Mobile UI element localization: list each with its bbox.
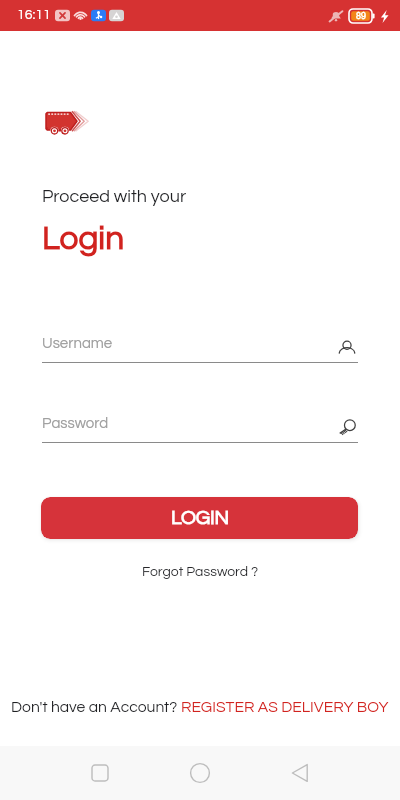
button[interactable]: Password bbox=[42, 415, 358, 443]
staticText: Login bbox=[42, 222, 125, 257]
other: Username bbox=[336, 336, 358, 358]
button[interactable]: Username bbox=[42, 335, 358, 363]
button[interactable]: Home bbox=[190, 763, 210, 783]
button[interactable]: Forgot Password ? bbox=[136, 563, 265, 581]
staticText: Forgot Password ? bbox=[142, 565, 259, 579]
staticText: Password bbox=[42, 416, 109, 431]
button[interactable]: LOGIN bbox=[41, 497, 358, 539]
other: Password bbox=[336, 416, 358, 438]
staticText: Username bbox=[42, 336, 113, 351]
staticText: REGISTER AS DELIVERY BOY bbox=[181, 699, 389, 715]
button[interactable]: REGISTER AS DELIVERY BOY bbox=[181, 699, 389, 715]
staticText: Proceed with your bbox=[42, 187, 187, 206]
other: App logo bbox=[45, 111, 91, 137]
staticText: 89 bbox=[356, 12, 366, 21]
staticText: Don't have an Account? bbox=[11, 699, 181, 715]
staticText: 16:11 bbox=[17, 8, 51, 22]
button[interactable]: Back bbox=[290, 763, 310, 783]
staticText: LOGIN bbox=[171, 508, 229, 529]
button[interactable]: Recents bbox=[90, 763, 110, 783]
